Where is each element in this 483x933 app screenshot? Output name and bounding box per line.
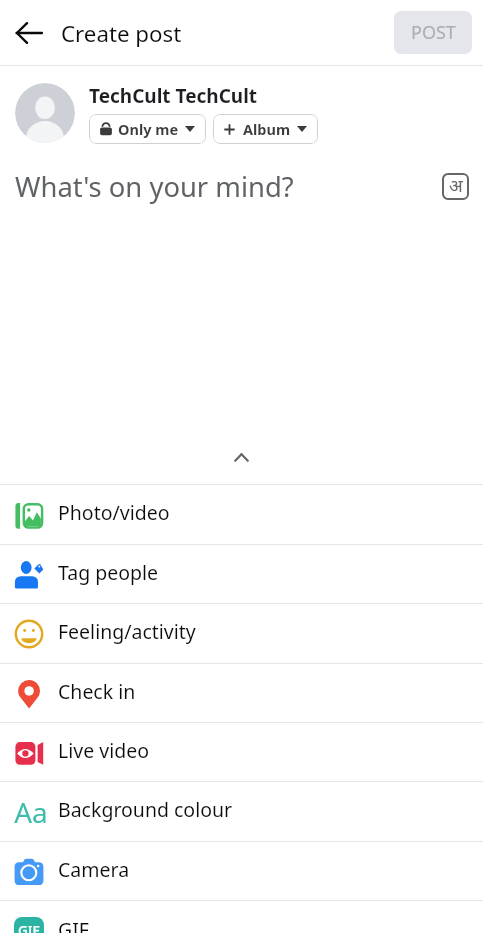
staticText: अ	[449, 173, 463, 198]
staticText: GIF	[58, 916, 89, 933]
button[interactable]: Feeling/activity	[0, 604, 483, 663]
staticText: Background colour	[58, 796, 233, 823]
button[interactable]: Live video	[0, 723, 483, 781]
staticText: What's on your mind?	[15, 168, 294, 205]
staticText: TechCult TechCult	[89, 83, 258, 109]
staticText: Live video	[58, 737, 149, 764]
staticText: Photo/video	[58, 499, 170, 526]
button[interactable]: Tag people	[0, 545, 483, 603]
button[interactable]: Language	[442, 173, 469, 200]
staticText: Camera	[58, 856, 130, 883]
button[interactable]: Album	[213, 114, 318, 144]
button[interactable]: Profile picture	[15, 83, 75, 143]
staticText: Aa	[1, 793, 61, 823]
button[interactable]: Aa	[0, 782, 483, 841]
staticText: Feeling/activity	[58, 618, 196, 645]
button[interactable]: Check in	[0, 664, 483, 722]
staticText: Tag people	[58, 559, 159, 586]
staticText: Album	[243, 119, 291, 139]
button[interactable]: Collapse	[0, 442, 483, 484]
button[interactable]: Camera	[0, 842, 483, 900]
button[interactable]: Only me	[89, 114, 206, 144]
staticText: GIF	[18, 922, 40, 933]
staticText: Only me	[118, 119, 179, 139]
button[interactable]: Photo/video	[0, 485, 483, 544]
staticText: Check in	[58, 678, 136, 705]
button[interactable]: POST	[394, 11, 472, 54]
button[interactable]: Back	[0, 4, 58, 62]
button[interactable]: GIF	[0, 901, 483, 933]
staticText: Create post	[61, 18, 182, 48]
staticText: POST	[411, 20, 456, 45]
